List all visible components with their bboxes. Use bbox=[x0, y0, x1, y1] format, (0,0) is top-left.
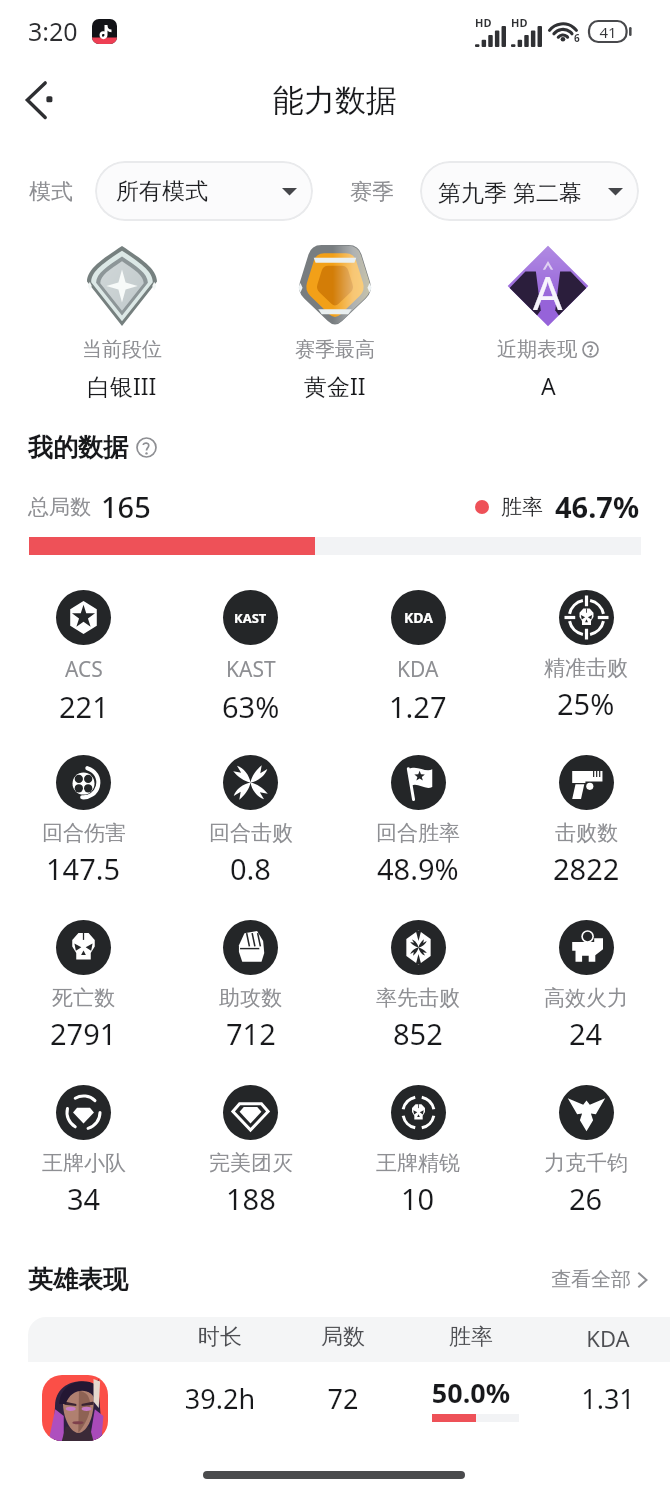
staticText: 能力数据 bbox=[273, 81, 397, 120]
staticText: 模式 bbox=[29, 178, 73, 206]
staticText: 回合胜率 bbox=[376, 820, 460, 846]
staticText: HD bbox=[511, 15, 528, 30]
staticText: 2791 bbox=[50, 1014, 117, 1053]
staticText: 黄金II bbox=[304, 370, 366, 401]
staticText: 第九季 第二幕 bbox=[438, 176, 582, 207]
button[interactable]: 回合伤害 bbox=[0, 755, 167, 920]
staticText: A bbox=[533, 261, 563, 324]
staticText: 胜率 bbox=[416, 1323, 526, 1351]
staticText: 高效火力 bbox=[544, 985, 628, 1011]
staticText: 63% bbox=[222, 687, 280, 726]
staticText: 1.27 bbox=[389, 687, 447, 726]
staticText: 50.0% bbox=[416, 1374, 526, 1411]
button[interactable]: 回合胜率 bbox=[334, 755, 502, 920]
staticText: 24 bbox=[569, 1014, 603, 1053]
staticText: ACS bbox=[65, 655, 103, 684]
button[interactable]: 所有模式 bbox=[95, 161, 313, 221]
staticText: 46.7% bbox=[555, 487, 640, 526]
button[interactable]: 高效火力 bbox=[502, 920, 670, 1085]
staticText: 39.2h bbox=[165, 1380, 275, 1417]
staticText: 26 bbox=[569, 1179, 603, 1218]
staticText: 赛季 bbox=[350, 178, 394, 206]
staticText: 1.31 bbox=[553, 1380, 663, 1417]
button[interactable]: 当前段位 bbox=[22, 240, 222, 401]
staticText: 147.5 bbox=[46, 849, 121, 888]
staticText: 25% bbox=[557, 684, 615, 723]
staticText: 率先击败 bbox=[376, 985, 460, 1011]
staticText: 英雄表现 bbox=[28, 1264, 128, 1295]
staticText: 221 bbox=[59, 687, 109, 726]
button[interactable]: 39.2h bbox=[28, 1362, 670, 1467]
button[interactable]: 率先击败 bbox=[334, 920, 502, 1085]
staticText: 我的数据 bbox=[28, 432, 128, 463]
button[interactable]: 力克千钧 bbox=[502, 1085, 670, 1250]
button[interactable]: 完美团灭 bbox=[167, 1085, 334, 1250]
staticText: 死亡数 bbox=[52, 985, 115, 1011]
staticText: 胜率 bbox=[501, 494, 543, 520]
staticText: 2822 bbox=[553, 849, 620, 888]
button[interactable]: 精准击败 bbox=[502, 590, 670, 755]
button[interactable]: KAST bbox=[167, 590, 334, 755]
staticText: 3:20 bbox=[28, 14, 78, 48]
button[interactable]: 回合击败 bbox=[167, 755, 334, 920]
staticText: 回合击败 bbox=[209, 820, 293, 846]
staticText: A bbox=[541, 370, 556, 401]
button[interactable]: ACS bbox=[0, 590, 167, 755]
staticText: 白银III bbox=[87, 370, 157, 401]
staticText: KDA bbox=[553, 1323, 663, 1353]
staticText: 时长 bbox=[165, 1323, 275, 1351]
staticText: KDA bbox=[404, 608, 433, 627]
button[interactable]: 助攻数 bbox=[167, 920, 334, 1085]
staticText: KAST bbox=[226, 655, 276, 684]
staticText: 总局数 bbox=[28, 494, 91, 520]
staticText: 击败数 bbox=[555, 820, 618, 846]
button[interactable]: 击败数 bbox=[502, 755, 670, 920]
staticText: 852 bbox=[393, 1014, 443, 1053]
staticText: HD bbox=[475, 15, 492, 30]
staticText: 王牌小队 bbox=[42, 1150, 126, 1176]
staticText: 力克千钧 bbox=[544, 1150, 628, 1176]
staticText: 当前段位 bbox=[82, 337, 162, 362]
staticText: 712 bbox=[226, 1014, 276, 1053]
staticText: 助攻数 bbox=[219, 985, 282, 1011]
staticText: 王牌精锐 bbox=[376, 1150, 460, 1176]
staticText: 回合伤害 bbox=[42, 820, 126, 846]
staticText: 精准击败 bbox=[544, 655, 628, 681]
staticText: 72 bbox=[288, 1380, 398, 1417]
button[interactable]: 查看全部 bbox=[551, 1267, 648, 1292]
staticText: 41 bbox=[588, 22, 628, 42]
button[interactable]: Back bbox=[8, 67, 74, 133]
staticText: 188 bbox=[226, 1179, 276, 1218]
staticText: 近期表现 bbox=[497, 337, 577, 362]
button[interactable]: 王牌小队 bbox=[0, 1085, 167, 1250]
staticText: 10 bbox=[401, 1179, 435, 1218]
button[interactable]: 死亡数 bbox=[0, 920, 167, 1085]
staticText: 赛季最高 bbox=[295, 337, 375, 362]
button[interactable]: KDA bbox=[334, 590, 502, 755]
button[interactable]: 赛季最高 bbox=[235, 240, 435, 401]
staticText: 局数 bbox=[288, 1323, 398, 1351]
staticText: KDA bbox=[397, 655, 439, 684]
staticText: KAST bbox=[234, 609, 267, 627]
button[interactable]: 第九季 第二幕 bbox=[420, 161, 639, 221]
button[interactable]: 王牌精锐 bbox=[334, 1085, 502, 1250]
staticText: 完美团灭 bbox=[209, 1150, 293, 1176]
staticText: 查看全部 bbox=[551, 1267, 631, 1292]
staticText: 48.9% bbox=[377, 849, 459, 888]
staticText: 34 bbox=[67, 1179, 101, 1218]
button[interactable]: A bbox=[448, 240, 648, 401]
staticText: 165 bbox=[101, 487, 151, 526]
staticText: 0.8 bbox=[230, 849, 271, 888]
staticText: 6 bbox=[574, 31, 580, 45]
staticText: 所有模式 bbox=[116, 177, 208, 206]
